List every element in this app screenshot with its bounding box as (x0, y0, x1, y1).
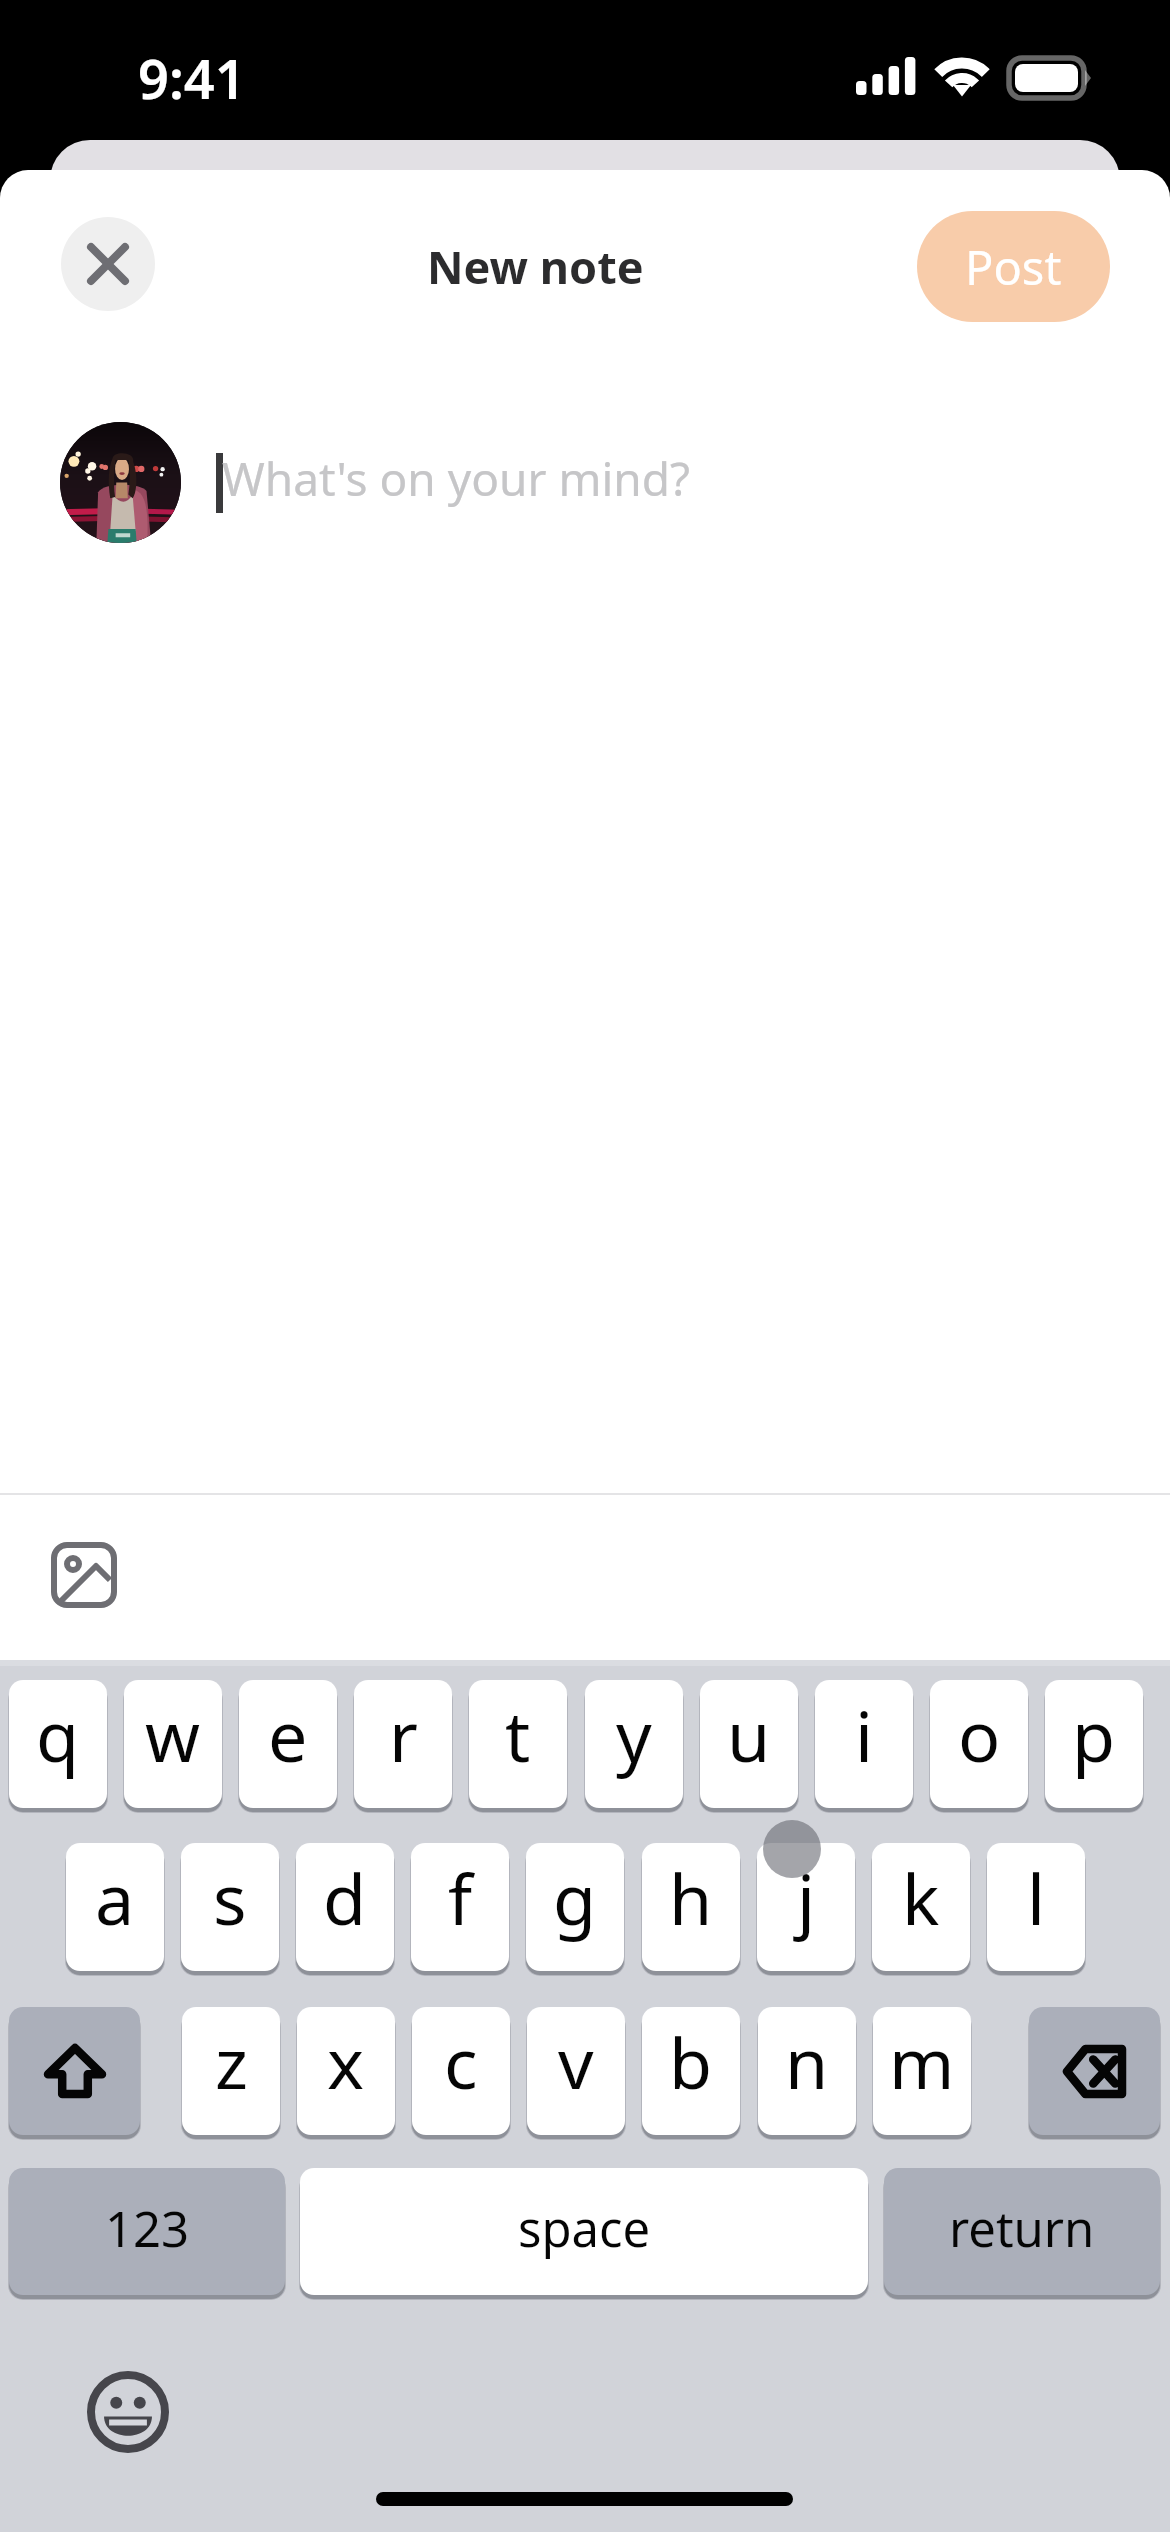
staticText: l (1027, 1850, 1046, 1945)
staticText: q (36, 1687, 80, 1782)
staticText: g (553, 1850, 597, 1945)
button[interactable]: q (9, 1680, 107, 1808)
button[interactable]: u (700, 1680, 798, 1808)
button[interactable]: r (354, 1680, 452, 1808)
staticText: s (213, 1850, 247, 1945)
staticText: b (669, 2014, 713, 2109)
staticText: z (215, 2014, 248, 2109)
staticText: n (785, 2014, 829, 2109)
staticText: e (268, 1687, 308, 1782)
staticText: x (327, 2014, 365, 2109)
button[interactable]: c (412, 2007, 510, 2135)
button[interactable]: b (642, 2007, 740, 2135)
staticText: p (1072, 1687, 1116, 1782)
button[interactable]: d (296, 1843, 394, 1971)
staticText: u (727, 1687, 771, 1782)
staticText: a (95, 1850, 135, 1945)
staticText: m (889, 2014, 955, 2109)
staticText: c (444, 2014, 478, 2109)
button[interactable]: e (239, 1680, 337, 1808)
button[interactable]: space (300, 2168, 868, 2295)
staticText: t (505, 1687, 531, 1782)
button[interactable]: y (585, 1680, 683, 1808)
button[interactable]: v (527, 2007, 625, 2135)
button[interactable]: i (815, 1680, 913, 1808)
staticText: return (949, 2195, 1095, 2262)
button[interactable]: k (872, 1843, 970, 1971)
staticText: New note (427, 236, 644, 297)
staticText: k (902, 1850, 940, 1945)
button[interactable]: f (411, 1843, 509, 1971)
button[interactable]: Post (917, 211, 1110, 322)
staticText: v (558, 2014, 594, 2109)
staticText: Post (965, 235, 1062, 299)
button[interactable]: What's on your mind? (210, 420, 1110, 550)
staticText: j (797, 1850, 816, 1945)
button[interactable]: g (526, 1843, 624, 1971)
staticText: d (323, 1850, 367, 1945)
button[interactable]: s (181, 1843, 279, 1971)
staticText: i (855, 1687, 874, 1782)
button[interactable]: o (930, 1680, 1028, 1808)
button[interactable]: j (757, 1843, 855, 1971)
button[interactable]: x (297, 2007, 395, 2135)
staticText: y (616, 1687, 652, 1782)
staticText: o (958, 1687, 1001, 1782)
button[interactable]: Add image (48, 1539, 120, 1611)
button[interactable]: n (758, 2007, 856, 2135)
button[interactable]: Shift (9, 2007, 140, 2135)
button[interactable]: Backspace (1029, 2007, 1160, 2135)
button[interactable]: h (642, 1843, 740, 1971)
button[interactable]: m (873, 2007, 971, 2135)
button[interactable]: p (1045, 1680, 1143, 1808)
button[interactable]: z (182, 2007, 280, 2135)
staticText: What's on your mind? (222, 447, 690, 510)
button[interactable]: Emoji (86, 2370, 170, 2454)
button[interactable]: a (66, 1843, 164, 1971)
staticText: space (518, 2195, 651, 2262)
staticText: f (448, 1850, 473, 1945)
button[interactable]: return (884, 2168, 1160, 2295)
button[interactable]: w (124, 1680, 222, 1808)
staticText: 9:41 (138, 41, 246, 115)
button[interactable]: l (987, 1843, 1085, 1971)
staticText: h (669, 1850, 713, 1945)
button[interactable]: 123 (9, 2168, 285, 2295)
staticText: 123 (105, 2195, 190, 2262)
button[interactable]: Close (61, 217, 155, 311)
button[interactable]: t (469, 1680, 567, 1808)
staticText: w (145, 1687, 201, 1782)
staticText: r (389, 1687, 418, 1782)
